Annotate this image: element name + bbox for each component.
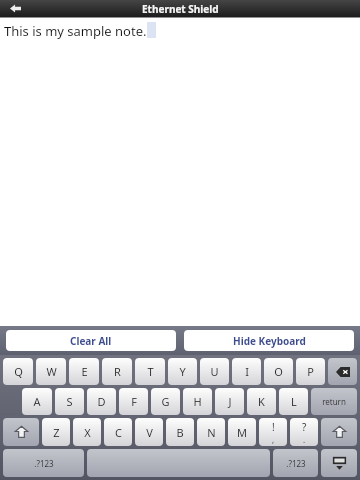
staticText: A [33, 394, 41, 409]
button[interactable]: D [87, 388, 116, 415]
staticText: Y [179, 364, 186, 379]
button[interactable]: Z [42, 418, 70, 446]
staticText: , [272, 434, 275, 445]
button[interactable]: P [296, 358, 325, 385]
staticText: ! [272, 420, 275, 434]
staticText: T [147, 364, 154, 379]
staticText: D [97, 394, 106, 409]
staticText: W [46, 364, 57, 379]
staticText: Z [53, 425, 60, 440]
button[interactable]: N [197, 418, 225, 446]
staticText: K [258, 394, 265, 409]
staticText: B [176, 425, 184, 440]
staticText: J [228, 394, 232, 409]
staticText: This is my sample note. [4, 22, 147, 40]
button[interactable]: L [279, 388, 308, 415]
staticText: C [115, 425, 122, 440]
staticText: .?123 [286, 458, 306, 469]
staticText: L [291, 394, 297, 409]
staticText: V [146, 425, 153, 440]
button[interactable]: A [22, 388, 52, 415]
button[interactable]: Space [87, 449, 270, 477]
button[interactable]: Shift [3, 418, 39, 446]
button[interactable]: I [232, 358, 261, 385]
staticText: M [237, 425, 247, 440]
button[interactable]: K [247, 388, 276, 415]
button[interactable]: J [215, 388, 244, 415]
button[interactable]: .?123 [273, 449, 318, 477]
staticText: X [84, 425, 91, 440]
staticText: F [131, 394, 137, 409]
button[interactable]: T [135, 358, 165, 385]
button[interactable]: Q [3, 358, 33, 385]
button[interactable]: U [200, 358, 229, 385]
button[interactable]: Hide Keyboard [184, 330, 354, 351]
staticText: G [161, 394, 170, 409]
staticText: R [114, 364, 121, 379]
button[interactable]: S [55, 388, 84, 415]
button[interactable]: V [135, 418, 163, 446]
button[interactable]: Backspace [328, 358, 357, 385]
staticText: ? [302, 420, 307, 434]
staticText: Q [14, 364, 23, 379]
staticText: P [307, 364, 314, 379]
staticText: I [245, 364, 249, 379]
button[interactable]: X [73, 418, 101, 446]
button[interactable]: Dismiss keyboard [321, 449, 357, 477]
staticText: return [322, 396, 346, 407]
staticText: H [193, 394, 202, 409]
staticText: O [274, 364, 283, 379]
button[interactable]: R [102, 358, 132, 385]
button[interactable]: ! [259, 418, 287, 446]
button[interactable]: G [151, 388, 180, 415]
staticText: . [303, 434, 306, 445]
staticText: E [81, 364, 88, 379]
staticText: .?123 [34, 458, 54, 469]
staticText: U [210, 364, 219, 379]
button[interactable]: B [166, 418, 194, 446]
button[interactable]: ? [290, 418, 318, 446]
button[interactable]: F [119, 388, 148, 415]
button[interactable]: E [69, 358, 99, 385]
button[interactable]: Back [0, 0, 30, 17]
staticText: N [207, 425, 216, 440]
button[interactable]: Clear All [6, 330, 176, 351]
button[interactable]: H [183, 388, 212, 415]
button[interactable]: Shift [321, 418, 357, 446]
staticText: Clear All [70, 334, 112, 348]
button[interactable]: C [104, 418, 132, 446]
button[interactable]: return [311, 388, 357, 415]
button[interactable]: O [264, 358, 293, 385]
staticText: S [66, 394, 73, 409]
staticText: Hide Keyboard [233, 334, 306, 348]
button[interactable]: M [228, 418, 256, 446]
button[interactable]: W [36, 358, 66, 385]
staticText: Ethernet Shield [142, 2, 219, 16]
button[interactable]: .?123 [3, 449, 84, 477]
button[interactable]: Y [168, 358, 197, 385]
